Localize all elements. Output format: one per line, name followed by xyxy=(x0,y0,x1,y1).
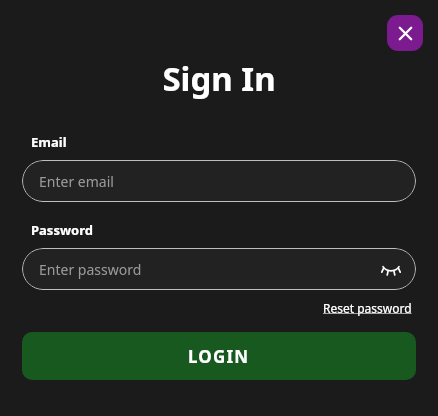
staticText: Email xyxy=(31,133,67,151)
staticText: LOGIN xyxy=(188,345,250,368)
button[interactable]: Reset password xyxy=(319,298,416,318)
staticText: Sign In xyxy=(162,56,276,101)
button[interactable]: Enter password xyxy=(22,248,416,290)
button[interactable]: Enter email xyxy=(22,160,416,202)
button[interactable]: Close xyxy=(387,15,423,51)
button[interactable]: LOGIN xyxy=(22,332,416,380)
staticText: Password xyxy=(31,221,93,239)
staticText: Enter email xyxy=(39,172,114,191)
staticText: Enter password xyxy=(39,260,142,279)
button[interactable]: Show password xyxy=(378,256,404,282)
staticText: Reset password xyxy=(323,300,412,316)
